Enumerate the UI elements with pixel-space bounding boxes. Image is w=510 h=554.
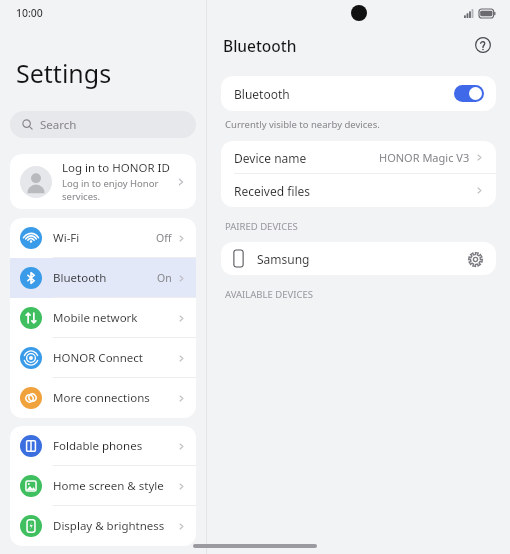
button[interactable]: Mobile network	[10, 298, 196, 338]
staticText: Currently visible to nearby devices.	[225, 118, 380, 131]
staticText: Bluetooth	[223, 35, 297, 56]
button[interactable]: Bluetooth	[221, 76, 496, 111]
staticText: Bluetooth	[234, 86, 454, 102]
button[interactable]: More connections	[10, 378, 196, 418]
staticText: More connections	[53, 390, 177, 406]
button[interactable]: Home screen & style	[10, 466, 196, 506]
staticText: Foldable phones	[53, 438, 177, 454]
staticText: Search	[40, 117, 77, 133]
staticText: Off	[156, 231, 172, 245]
staticText: AVAILABLE DEVICES	[225, 288, 313, 301]
staticText: Home screen & style	[53, 478, 177, 494]
button[interactable]: Samsung	[221, 242, 496, 275]
staticText: Bluetooth	[53, 270, 157, 286]
button[interactable]: Device name	[221, 141, 496, 174]
staticText: HONOR Magic V3	[379, 150, 470, 165]
staticText: Device name	[234, 150, 379, 166]
button[interactable]: Foldable phones	[10, 426, 196, 466]
staticText: Log in to enjoy Honor	[62, 177, 159, 190]
staticText: PAIRED DEVICES	[225, 220, 298, 233]
staticText: 10:00	[16, 6, 43, 20]
button[interactable]: Device settings	[464, 248, 486, 270]
button[interactable]: Bluetooth	[10, 258, 196, 298]
button[interactable]: Received files	[221, 174, 496, 207]
staticText: Wi-Fi	[53, 230, 156, 246]
button[interactable]: Display & brightness	[10, 506, 196, 546]
button[interactable]: Help	[470, 32, 496, 58]
button[interactable]: Log in to HONOR ID	[10, 154, 196, 209]
staticText: HONOR Connect	[53, 350, 177, 366]
staticText: services.	[62, 190, 101, 203]
staticText: Log in to HONOR ID	[62, 160, 170, 176]
staticText: Mobile network	[53, 310, 177, 326]
button[interactable]: Search	[10, 111, 196, 138]
staticText: On	[157, 271, 172, 285]
staticText: Received files	[234, 183, 475, 199]
staticText: Settings	[16, 56, 112, 90]
staticText: Display & brightness	[53, 518, 177, 534]
staticText: Samsung	[257, 251, 464, 267]
button[interactable]: Wi-Fi	[10, 218, 196, 258]
button[interactable]: HONOR Connect	[10, 338, 196, 378]
